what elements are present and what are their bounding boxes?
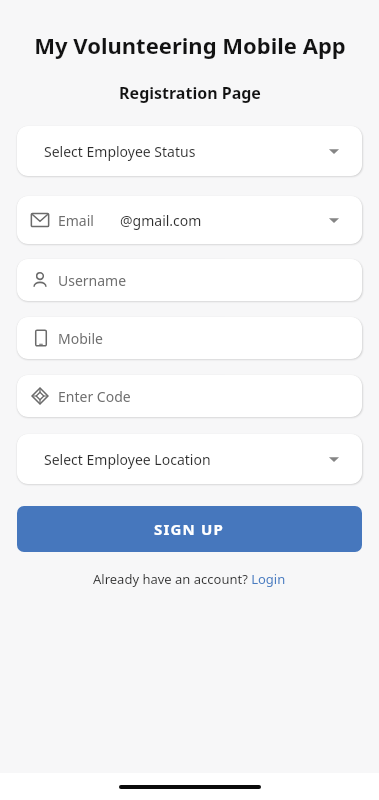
staticText: Enter Code — [58, 387, 131, 406]
staticText: SIGN UP — [154, 519, 225, 539]
staticText: @gmail.com — [120, 211, 202, 230]
other: Open dropdown — [328, 214, 340, 226]
button[interactable]: Already have an account? Login — [87, 568, 292, 590]
other: Open dropdown — [328, 453, 340, 465]
staticText: My Volunteering Mobile App — [34, 30, 346, 60]
staticText: Already have an account? Login — [93, 570, 286, 588]
staticText: Email — [58, 211, 94, 230]
button[interactable]: Username — [17, 259, 362, 301]
staticText: Mobile — [58, 329, 103, 348]
button[interactable]: Select Employee Location — [17, 434, 362, 484]
staticText: Username — [58, 271, 127, 290]
button[interactable]: Email — [17, 196, 362, 244]
button[interactable]: Select Employee Status — [17, 126, 362, 176]
staticText: Registration Page — [119, 82, 261, 104]
button[interactable]: Enter Code — [17, 375, 362, 417]
button[interactable]: SIGN UP — [17, 506, 362, 552]
staticText: Select Employee Location — [44, 450, 211, 469]
staticText: Select Employee Status — [44, 142, 196, 161]
button[interactable]: Mobile — [17, 317, 362, 359]
other: Open dropdown — [328, 145, 340, 157]
